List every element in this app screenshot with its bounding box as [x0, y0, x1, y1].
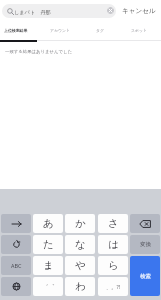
staticText: ら [108, 259, 119, 272]
staticText: 変換 [140, 241, 151, 248]
button[interactable]: Clear text [107, 7, 114, 14]
button[interactable]: な [65, 235, 95, 254]
button[interactable]: か [65, 214, 95, 233]
staticText: キャンセル [122, 7, 156, 15]
button[interactable]: Move cursor right [1, 214, 31, 233]
staticText: さ [108, 217, 119, 230]
staticText: しまパト 丹那 [14, 8, 51, 15]
button[interactable]: しまパト 丹那 [2, 4, 116, 18]
staticText: ゛゜ [42, 283, 55, 291]
staticText: や [75, 259, 86, 272]
staticText: 、。?! [106, 283, 121, 290]
button[interactable]: や [65, 256, 95, 275]
button[interactable]: ゛゜ [33, 277, 63, 296]
staticText: 上位検索結果 [4, 28, 28, 33]
staticText: あ [43, 217, 54, 230]
staticText: な [75, 238, 86, 251]
staticText: わ [75, 280, 86, 293]
staticText: か [75, 217, 86, 230]
button[interactable]: タグ [82, 21, 117, 40]
button[interactable]: Switch keyboard language [1, 277, 31, 296]
button[interactable]: ら [98, 256, 128, 275]
button[interactable]: Backspace [130, 214, 160, 233]
staticText: た [43, 238, 54, 251]
button[interactable]: 変換 [130, 235, 160, 254]
button[interactable]: さ [98, 214, 128, 233]
button[interactable]: アカウント [37, 21, 82, 40]
staticText: ABC [11, 262, 22, 269]
button[interactable]: 、。?! [98, 277, 128, 296]
staticText: アカウント [50, 28, 70, 33]
button[interactable]: スポット [117, 21, 161, 40]
button[interactable]: あ [33, 214, 63, 233]
staticText: は [108, 238, 119, 251]
button[interactable]: ABC [1, 256, 31, 275]
button[interactable]: わ [65, 277, 95, 296]
button[interactable]: は [98, 235, 128, 254]
button[interactable]: Undo [1, 235, 31, 254]
button[interactable]: ま [33, 256, 63, 275]
button[interactable]: キャンセル [117, 0, 161, 21]
button[interactable]: 上位検索結果 [0, 21, 34, 40]
staticText: 一致する結果はありませんでした [5, 49, 72, 55]
button[interactable]: 検索 [130, 256, 160, 296]
button[interactable]: た [33, 235, 63, 254]
staticText: タグ [96, 28, 104, 33]
staticText: スポット [131, 28, 147, 33]
staticText: 検索 [140, 273, 151, 280]
staticText: ま [43, 259, 54, 272]
